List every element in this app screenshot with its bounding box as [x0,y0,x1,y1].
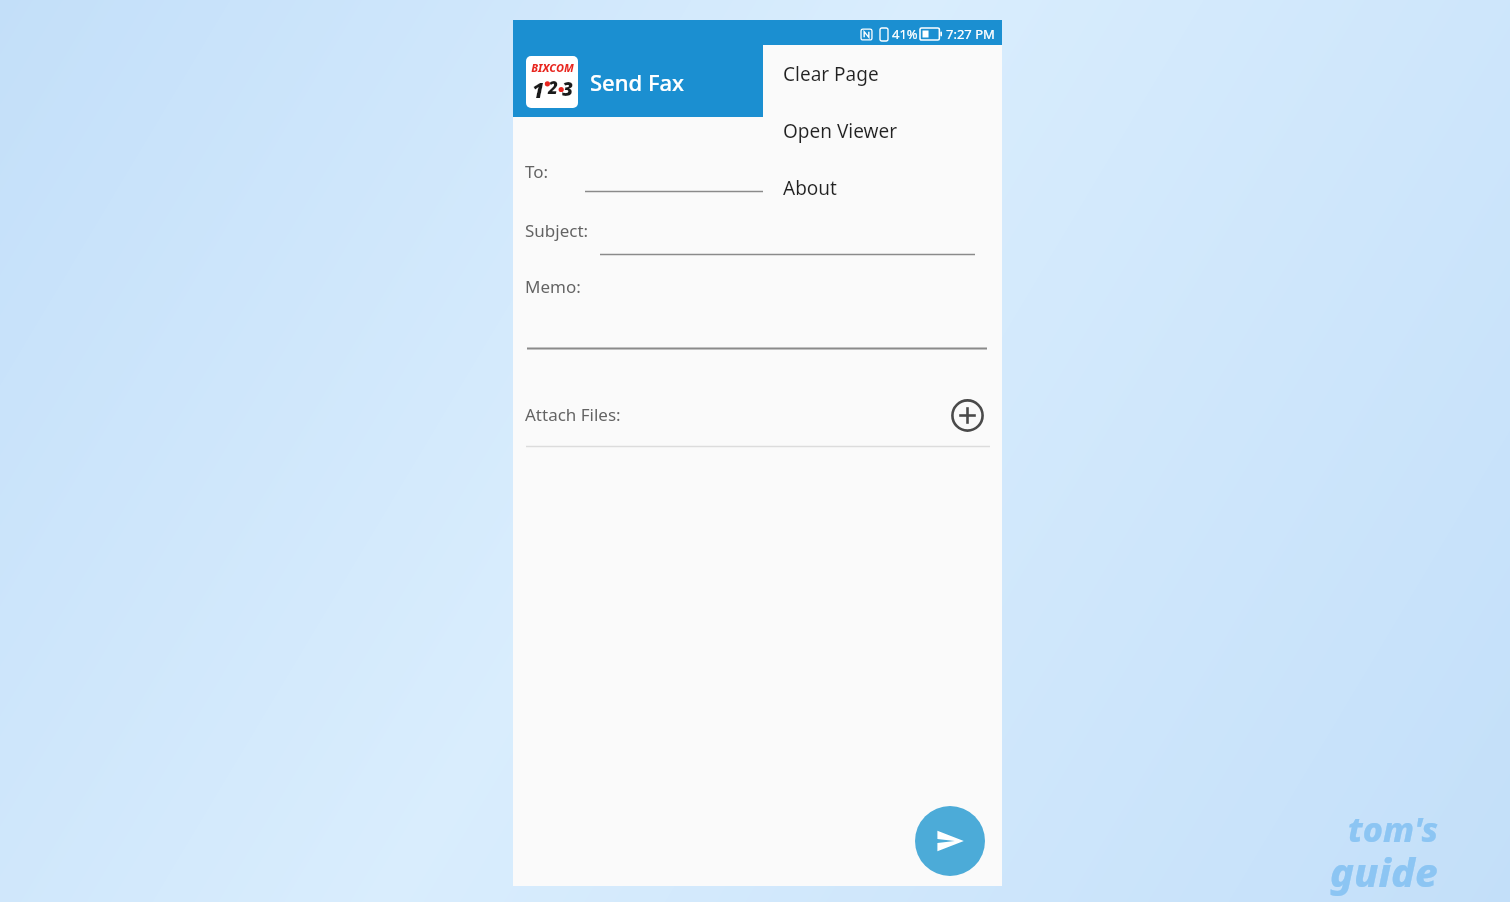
staticText: 2 [548,76,558,99]
staticText: Memo: [525,275,581,298]
staticText: To: [525,160,549,183]
staticText: About [783,175,837,201]
button[interactable]: Clear Page [763,45,1002,102]
staticText: Subject: [525,219,589,242]
button[interactable]: Send fax [915,806,985,876]
staticText: 7:27 PM [946,25,995,43]
staticText: Open Viewer [783,118,898,144]
button[interactable]: Open Viewer [763,102,1002,159]
button[interactable]: About [763,159,1002,216]
staticText: Clear Page [783,61,879,87]
staticText: 41% [892,25,918,43]
staticText: Attach Files: [525,403,621,426]
staticText: Send Fax [590,67,685,97]
button[interactable]: App icon [526,56,578,108]
staticText: 3 [562,76,574,102]
staticText: tom's [1348,806,1438,852]
staticText: guide [1330,844,1438,898]
button[interactable]: Attach files [947,395,987,435]
staticText: BIXCOM [531,60,574,75]
staticText: 1 [532,76,545,102]
